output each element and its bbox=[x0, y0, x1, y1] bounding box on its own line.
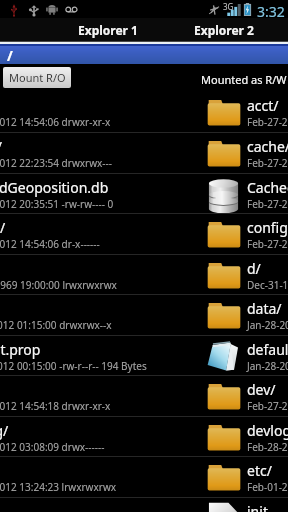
staticText: etc/ bbox=[247, 461, 272, 480]
button[interactable]: etc/ bbox=[196, 457, 288, 497]
button[interactable]: cache/ bbox=[196, 133, 288, 173]
staticText: Feb-27-2012 20:35:51 -rw-rw---- 0 bbox=[0, 197, 114, 211]
button[interactable]: Mount R/O bbox=[3, 67, 71, 88]
staticText: Explorer 2 bbox=[194, 22, 254, 38]
button[interactable]: CachedGeoposition.db bbox=[196, 174, 288, 213]
staticText: config/ bbox=[247, 218, 288, 237]
staticText: Feb-27-2012 22:23:54 drwxrwx--- bbox=[0, 156, 112, 170]
button[interactable]: etc/ bbox=[0, 457, 196, 497]
staticText: cache/ bbox=[0, 137, 3, 156]
staticText: data/ bbox=[247, 299, 282, 318]
button[interactable]: acct/ bbox=[0, 92, 196, 132]
staticText: Mounted as R/W bbox=[201, 72, 287, 87]
staticText: default.prop bbox=[247, 340, 288, 359]
staticText: Feb-27-2012 14:54:18 drwxr-xr-x bbox=[0, 399, 111, 413]
button[interactable]: config/ bbox=[0, 214, 196, 254]
staticText: Feb-28-2012 03:08:09 drwx------ bbox=[247, 440, 288, 454]
button[interactable]: data/ bbox=[0, 295, 196, 335]
staticText: Feb-27-2012 14:54:06 drwxr-xr-x bbox=[0, 115, 111, 129]
button[interactable]: default.prop bbox=[0, 336, 196, 375]
staticText: cache/ bbox=[247, 137, 288, 156]
staticText: Feb-27-2012 22:23:54 drwxrwx--- bbox=[247, 156, 288, 170]
staticText: Feb-27-2012 20:35:51 -rw-rw---- 0 bbox=[247, 197, 288, 211]
staticText: Jan-28-2012 01:15:00 drwxrwx--x bbox=[247, 318, 288, 332]
staticText: 3G bbox=[223, 1, 234, 12]
staticText: Feb-27-2012 14:54:06 dr-x------ bbox=[247, 237, 288, 251]
staticText: Jan-28-2012 01:15:00 drwxrwx--x bbox=[0, 318, 112, 332]
button[interactable]: data/ bbox=[196, 295, 288, 335]
staticText: Feb-27-2012 14:54:18 drwxr-xr-x bbox=[247, 399, 288, 413]
staticText: config/ bbox=[0, 218, 6, 237]
staticText: Feb-01-2012 13:24:23 lrwxrwxrwx bbox=[0, 480, 117, 494]
button[interactable]: cache/ bbox=[0, 133, 196, 173]
staticText: Feb-28-2012 03:08:09 drwx------ bbox=[0, 440, 105, 454]
button[interactable]: Explorer 2 bbox=[186, 18, 262, 41]
staticText: Jan-28-2012 00:15:00 -rw-r--r-- 194 Byte… bbox=[247, 359, 288, 373]
staticText: default.prop bbox=[0, 340, 41, 359]
button[interactable]: dev/ bbox=[196, 376, 288, 416]
staticText: devlog/ bbox=[0, 421, 9, 440]
button[interactable]: d/ bbox=[0, 255, 196, 294]
button[interactable]: Explorer 1 bbox=[70, 18, 146, 41]
staticText: Feb-01-2012 13:24:23 lrwxrwxrwx bbox=[247, 480, 288, 494]
staticText: Feb-27-2012 14:54:06 drwxr-xr-x bbox=[247, 115, 288, 129]
staticText: acct/ bbox=[247, 96, 279, 115]
button[interactable]: / bbox=[0, 46, 288, 64]
staticText: dev/ bbox=[247, 380, 276, 399]
button[interactable]: dev/ bbox=[0, 376, 196, 416]
button[interactable]: devlog/ bbox=[0, 417, 196, 456]
staticText: devlog/ bbox=[247, 421, 288, 440]
button[interactable]: d/ bbox=[196, 255, 288, 294]
staticText: Dec-31-1969 19:00:00 lrwxrwxrwx bbox=[0, 278, 117, 292]
staticText: init bbox=[247, 502, 268, 512]
staticText: CachedGeoposition.db bbox=[0, 178, 109, 197]
staticText: Dec-31-1969 19:00:00 lrwxrwxrwx bbox=[247, 278, 288, 292]
button[interactable]: init bbox=[196, 498, 288, 512]
staticText: CachedGeoposition.db bbox=[247, 178, 288, 197]
staticText: Jan-28-2012 00:15:00 -rw-r--r-- 194 Byte… bbox=[0, 359, 147, 373]
staticText: / bbox=[7, 46, 13, 63]
staticText: d/ bbox=[247, 259, 261, 278]
staticText: Explorer 1 bbox=[78, 22, 138, 38]
staticText: 3:32 bbox=[257, 2, 285, 20]
button[interactable]: devlog/ bbox=[196, 417, 288, 456]
staticText: Feb-27-2012 14:54:06 dr-x------ bbox=[0, 237, 100, 251]
staticText: Mount R/O bbox=[9, 70, 66, 85]
button[interactable]: config/ bbox=[196, 214, 288, 254]
button[interactable]: default.prop bbox=[196, 336, 288, 375]
button[interactable]: acct/ bbox=[196, 92, 288, 132]
button[interactable]: CachedGeoposition.db bbox=[0, 174, 196, 213]
